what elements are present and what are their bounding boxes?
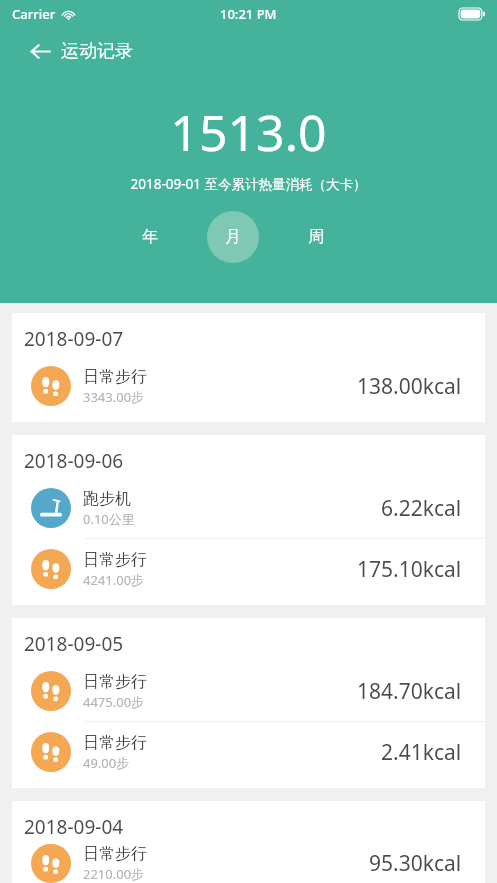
button[interactable]: 日常步行 — [12, 661, 485, 721]
staticText: 日常步行 — [83, 367, 147, 387]
button[interactable]: 日常步行 — [12, 844, 485, 883]
staticText: 年 — [142, 227, 158, 247]
button[interactable]: 2018-09-05 — [12, 618, 485, 788]
staticText: 2018-09-04 — [24, 814, 124, 840]
staticText: 2018-09-06 — [24, 448, 124, 474]
button[interactable]: 日常步行 — [12, 356, 485, 416]
staticText: 95.30kcal — [369, 849, 462, 878]
staticText: 2210.00步 — [83, 865, 145, 883]
staticText: 138.00kcal — [357, 372, 462, 401]
staticText: 2.41kcal — [381, 738, 462, 767]
staticText: 日常步行 — [83, 844, 147, 864]
button[interactable]: 2018-09-04 — [12, 801, 485, 883]
staticText: 4241.00步 — [83, 571, 145, 589]
staticText: 周 — [308, 227, 324, 247]
staticText: 10:21 PM — [220, 5, 277, 23]
button[interactable]: 2018-09-06 — [12, 435, 485, 605]
button[interactable]: 日常步行 — [12, 539, 485, 599]
staticText: 跑步机 — [83, 489, 131, 509]
staticText: 2018-09-07 — [24, 326, 124, 352]
staticText: Carrier — [12, 5, 56, 23]
staticText: 6.22kcal — [381, 494, 462, 523]
staticText: 运动记录 — [61, 40, 133, 63]
button[interactable]: 日常步行 — [12, 722, 485, 782]
staticText: 175.10kcal — [357, 555, 462, 584]
staticText: 4475.00步 — [83, 693, 145, 711]
staticText: 月 — [225, 227, 241, 247]
button[interactable]: Back — [22, 33, 58, 69]
button[interactable]: 周 — [290, 211, 342, 263]
button[interactable]: 2018-09-07 — [12, 313, 485, 422]
staticText: 184.70kcal — [357, 677, 462, 706]
button[interactable]: 跑步机 — [12, 478, 485, 538]
staticText: 2018-09-05 — [24, 631, 124, 657]
staticText: 日常步行 — [83, 550, 147, 570]
button[interactable]: 年 — [124, 211, 176, 263]
staticText: 日常步行 — [83, 672, 147, 692]
staticText: 日常步行 — [83, 733, 147, 753]
staticText: 49.00步 — [83, 754, 130, 772]
staticText: 3343.00步 — [83, 388, 145, 406]
staticText: 2018-09-01 至今累计热量消耗（大卡） — [0, 175, 497, 193]
staticText: 0.10公里 — [83, 510, 135, 528]
staticText: 1513.0 — [0, 98, 497, 166]
button[interactable]: 月 — [207, 211, 259, 263]
